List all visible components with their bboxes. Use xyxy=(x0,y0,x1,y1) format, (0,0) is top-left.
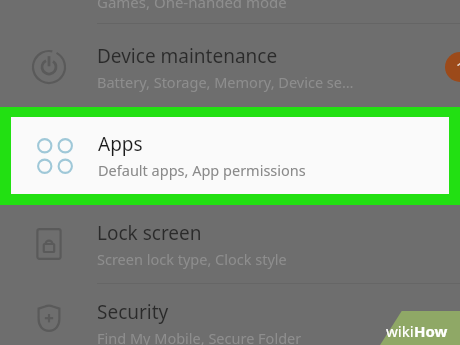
staticText: Security xyxy=(97,299,169,325)
staticText: Battery, Storage, Memory, Device se… xyxy=(97,72,354,92)
button[interactable]: Security xyxy=(0,285,460,345)
staticText: Default apps, App permissions xyxy=(98,160,306,180)
staticText: Apps xyxy=(98,131,143,157)
staticText: Device maintenance xyxy=(97,43,278,69)
staticText: Games, One-handed mode xyxy=(97,0,287,12)
staticText: Find My Mobile, Secure Folder xyxy=(97,328,302,345)
button[interactable]: Lock screen xyxy=(0,205,460,283)
button[interactable]: Games, One-handed mode xyxy=(0,0,460,24)
staticText: 1 xyxy=(456,57,460,77)
staticText: wiki xyxy=(386,321,414,341)
staticText: Lock screen xyxy=(97,220,202,246)
staticText: Screen lock type, Clock style xyxy=(97,249,287,269)
button[interactable]: Device maintenance xyxy=(0,27,460,107)
staticText: How xyxy=(414,321,448,341)
button[interactable]: Apps xyxy=(0,107,460,205)
